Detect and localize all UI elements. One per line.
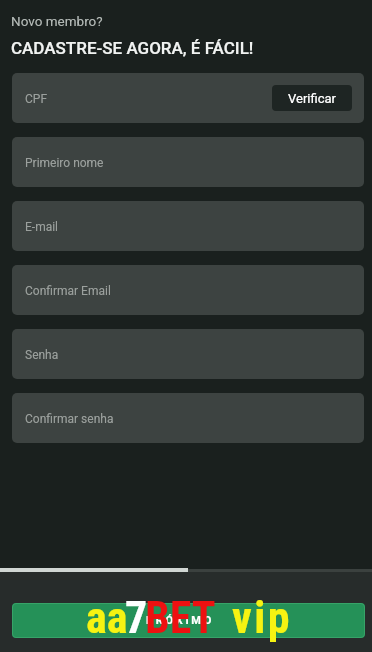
staticText: Confirmar Email bbox=[25, 284, 111, 298]
staticText: Verificar bbox=[288, 91, 336, 106]
button[interactable]: PRÓXIMO bbox=[12, 603, 365, 638]
button[interactable]: Confirmar Email bbox=[12, 265, 364, 315]
staticText: Confirmar senha bbox=[25, 412, 114, 426]
staticText: E-mail bbox=[25, 220, 59, 234]
staticText: Senha bbox=[25, 348, 59, 362]
staticText: Novo membro? bbox=[11, 13, 103, 29]
button[interactable]: Primeiro nome bbox=[12, 137, 364, 187]
button[interactable]: Verificar bbox=[272, 85, 352, 111]
button[interactable]: Confirmar senha bbox=[12, 393, 364, 443]
staticText: vip bbox=[232, 592, 292, 644]
staticText: aa bbox=[86, 592, 128, 644]
button[interactable]: CPF bbox=[12, 73, 364, 123]
staticText: CPF bbox=[25, 92, 48, 106]
staticText: CADASTRE-SE AGORA, É FÁCIL! bbox=[11, 38, 254, 58]
button[interactable]: E-mail bbox=[12, 201, 364, 251]
staticText: BET bbox=[145, 592, 216, 644]
button[interactable]: Senha bbox=[12, 329, 364, 379]
staticText: PRÓXIMO bbox=[146, 614, 214, 627]
staticText: Primeiro nome bbox=[25, 156, 104, 170]
staticText: 7 bbox=[125, 592, 148, 644]
